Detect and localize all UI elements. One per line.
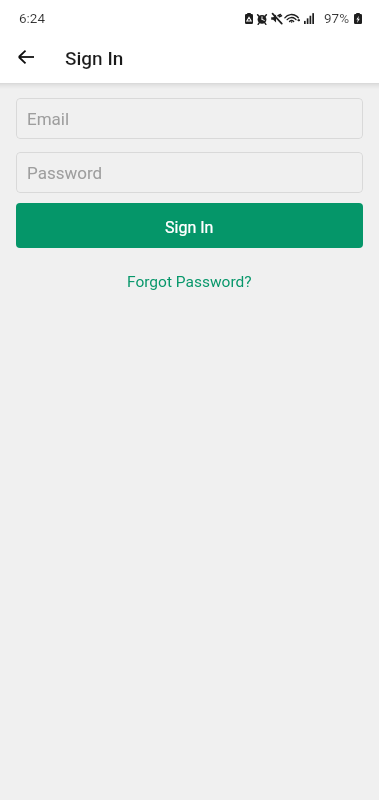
button[interactable]: Sign In: [16, 203, 363, 248]
staticText: Email: [27, 109, 70, 129]
button[interactable]: Email: [16, 98, 363, 139]
button[interactable]: Back: [10, 41, 42, 73]
button[interactable]: Password: [16, 152, 363, 193]
staticText: 6:24: [19, 10, 46, 26]
staticText: 97%: [324, 10, 350, 26]
staticText: Password: [27, 163, 103, 183]
staticText: Sign In: [165, 218, 214, 237]
staticText: Sign In: [65, 47, 124, 69]
button[interactable]: Forgot Password?: [117, 268, 262, 296]
staticText: Forgot Password?: [127, 273, 252, 291]
